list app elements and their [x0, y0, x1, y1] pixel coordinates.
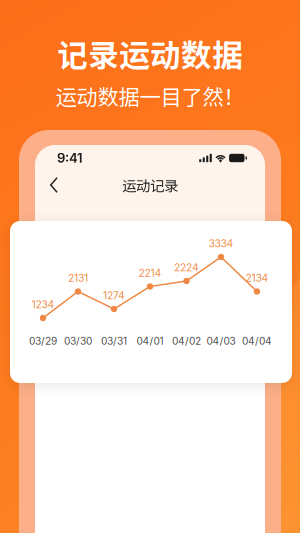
staticText: 2131	[68, 272, 88, 284]
staticText: 运动数据一目了然！	[55, 80, 244, 111]
button[interactable]: Back	[35, 171, 69, 199]
staticText: 03/30	[64, 335, 92, 347]
staticText: 04/04	[242, 335, 272, 347]
staticText: 1274	[103, 289, 125, 302]
staticText: 04/01	[136, 335, 163, 347]
staticText: 04/02	[172, 335, 201, 347]
staticText: 1234	[31, 298, 54, 311]
staticText: 3334	[208, 237, 233, 250]
staticText: 2224	[174, 261, 199, 274]
staticText: 04/03	[206, 335, 235, 347]
staticText: 2134	[245, 272, 268, 284]
staticText: 运动记录	[122, 175, 178, 195]
staticText: 2214	[138, 267, 161, 279]
staticText: 03/31	[101, 335, 127, 347]
staticText: 9:41	[57, 150, 83, 166]
staticText: 记录运动数据	[57, 31, 243, 75]
staticText: 03/29	[29, 335, 57, 347]
